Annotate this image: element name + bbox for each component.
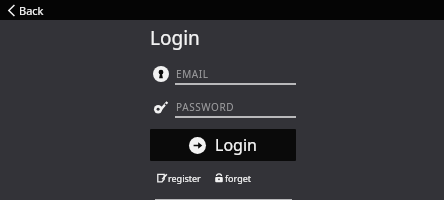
button[interactable]: forget bbox=[214, 170, 252, 186]
staticText: register bbox=[168, 172, 201, 184]
staticText: PASSWORD bbox=[176, 100, 235, 114]
staticText: Login bbox=[150, 25, 200, 51]
staticText: EMAIL bbox=[176, 67, 209, 81]
staticText: forget bbox=[225, 172, 252, 184]
button[interactable]: EMAIL bbox=[150, 65, 296, 85]
button[interactable]: Login bbox=[150, 129, 296, 161]
staticText: Back bbox=[19, 3, 44, 18]
button[interactable]: PASSWORD bbox=[150, 98, 296, 118]
button[interactable]: register bbox=[157, 170, 201, 186]
staticText: Login bbox=[215, 134, 257, 156]
button[interactable]: Back bbox=[0, 0, 54, 20]
